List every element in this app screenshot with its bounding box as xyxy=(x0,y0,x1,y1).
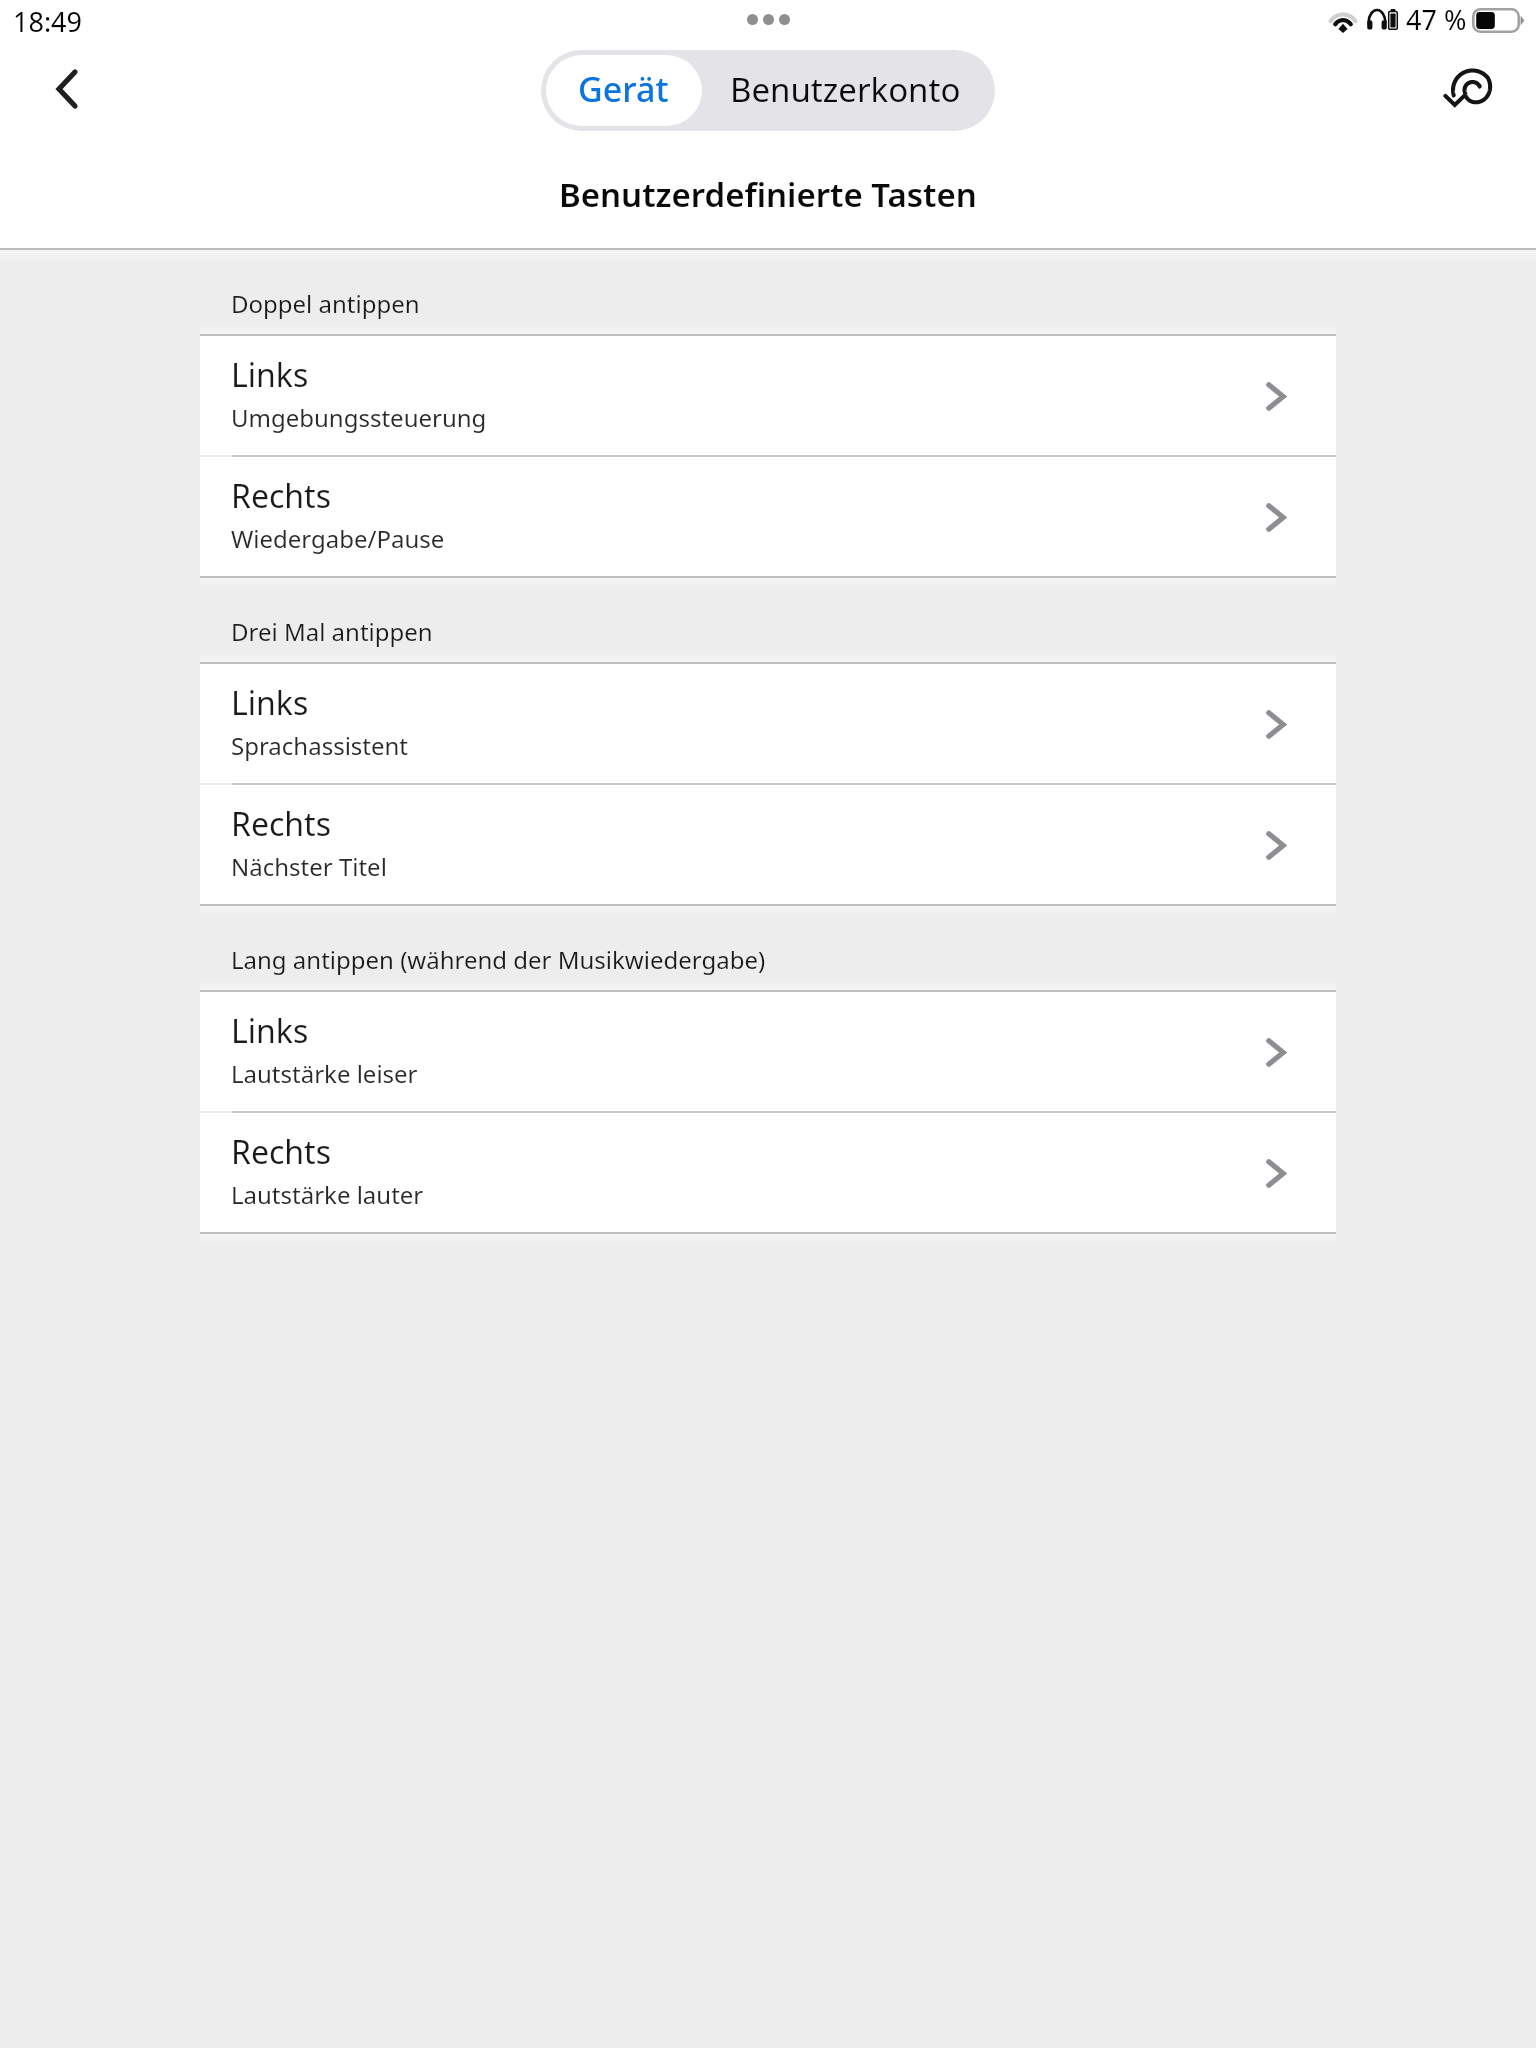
staticText: Sprachassistent xyxy=(231,729,409,762)
button[interactable]: Zurücksetzen xyxy=(1425,45,1515,135)
staticText: Lang antippen (während der Musikwiederga… xyxy=(231,943,766,976)
button[interactable]: Benutzerkonto xyxy=(699,50,992,131)
staticText: Links xyxy=(231,353,309,397)
button[interactable]: Links xyxy=(200,664,1336,783)
button[interactable]: Links xyxy=(200,336,1336,455)
staticText: Lautstärke lauter xyxy=(231,1178,424,1211)
staticText: Umgebungssteuerung xyxy=(231,401,487,434)
staticText: 47 % xyxy=(1406,1,1467,38)
staticText: Nächster Titel xyxy=(231,850,387,883)
staticText: Lautstärke leiser xyxy=(231,1057,418,1090)
button[interactable]: Gerät xyxy=(546,55,702,126)
staticText: Benutzerdefinierte Tasten xyxy=(559,172,977,217)
staticText: Rechts xyxy=(231,802,331,846)
button[interactable]: Rechts xyxy=(200,457,1336,576)
staticText: Rechts xyxy=(231,474,331,518)
staticText: Doppel antippen xyxy=(231,287,420,320)
button[interactable]: Zurück xyxy=(23,45,111,133)
staticText: Links xyxy=(231,1009,309,1053)
staticText: Rechts xyxy=(231,1130,331,1174)
button[interactable]: Links xyxy=(200,992,1336,1111)
staticText: Gerät xyxy=(578,66,669,112)
button[interactable]: Rechts xyxy=(200,1113,1336,1232)
staticText: Benutzerkonto xyxy=(730,67,961,112)
button[interactable]: Rechts xyxy=(200,785,1336,904)
staticText: 18:49 xyxy=(13,3,83,40)
staticText: Wiedergabe/Pause xyxy=(231,522,445,555)
staticText: Drei Mal antippen xyxy=(231,615,433,648)
staticText: Links xyxy=(231,681,309,725)
